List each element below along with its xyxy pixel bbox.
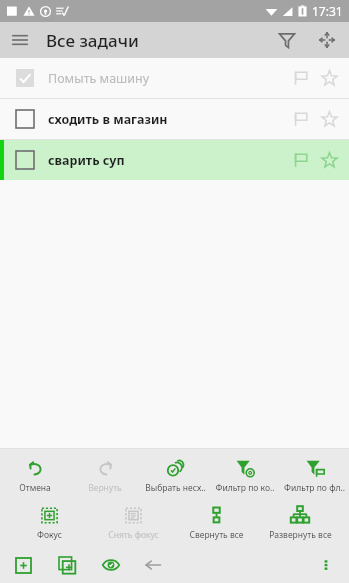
staticText: сходить в магазин xyxy=(48,111,287,128)
button[interactable]: Развернуть все xyxy=(265,502,335,543)
staticText: Снять фокус xyxy=(108,529,159,541)
button[interactable]: Back xyxy=(136,548,170,582)
button[interactable]: Снять фокус xyxy=(98,502,168,543)
button[interactable]: Фильтр по фл.. xyxy=(280,455,349,496)
button[interactable]: Toggle task xyxy=(16,151,34,169)
button[interactable]: Toggle task xyxy=(0,99,349,139)
button[interactable]: Flag xyxy=(287,105,315,133)
button[interactable]: Add task xyxy=(6,548,40,582)
staticText: Вернуть xyxy=(88,482,122,494)
staticText: 17:31 xyxy=(312,3,343,19)
staticText: Развернуть все xyxy=(269,529,332,541)
button[interactable]: Фокус xyxy=(14,502,84,543)
button[interactable]: Add multiple xyxy=(50,548,84,582)
staticText: Помыть машину xyxy=(48,70,287,87)
button[interactable]: Вернуть xyxy=(70,455,140,496)
button[interactable]: Фильтр по ко.. xyxy=(210,455,280,496)
button[interactable]: Отмена xyxy=(0,455,70,496)
button[interactable]: Star xyxy=(315,105,343,133)
staticText: Отмена xyxy=(19,482,51,494)
button[interactable]: Flag xyxy=(287,64,315,92)
button[interactable]: Toggle task xyxy=(16,110,34,128)
staticText: Все задачи xyxy=(46,29,139,52)
button[interactable]: Toggle task xyxy=(0,140,349,180)
button[interactable]: Flag xyxy=(287,146,315,174)
button[interactable]: Menu xyxy=(0,22,40,58)
staticText: Свернуть все xyxy=(189,529,244,541)
button[interactable]: More options xyxy=(309,548,343,582)
staticText: сварить суп xyxy=(48,152,287,169)
button[interactable]: Filter xyxy=(267,22,307,58)
button[interactable]: Toggle task xyxy=(0,58,349,98)
button[interactable]: Свернуть все xyxy=(181,502,251,543)
button[interactable]: Show completed xyxy=(94,548,128,582)
staticText: Выбрать несх.. xyxy=(145,482,206,494)
button[interactable]: Star xyxy=(315,64,343,92)
button[interactable]: Move xyxy=(307,22,347,58)
staticText: Фокус xyxy=(37,529,62,541)
button[interactable]: Выбрать несх.. xyxy=(140,455,210,496)
button[interactable]: Star xyxy=(315,146,343,174)
button[interactable]: Toggle task xyxy=(16,69,34,87)
staticText: Фильтр по фл.. xyxy=(284,482,345,494)
staticText: Фильтр по ко.. xyxy=(215,482,275,494)
